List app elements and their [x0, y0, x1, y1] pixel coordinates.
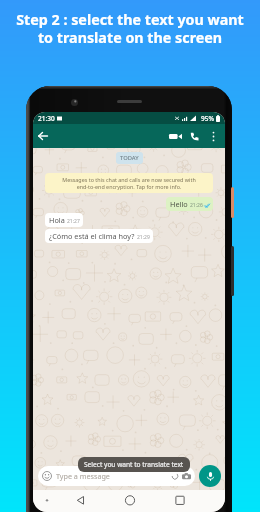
staticText: Type a message [56, 471, 110, 481]
staticText: TODAY [120, 154, 139, 162]
staticText: Messages to this chat and calls are now … [62, 176, 196, 190]
button[interactable]: More options [205, 124, 221, 148]
button[interactable]: ¿Cómo está el clima hoy? [45, 229, 153, 243]
button[interactable]: Video call [165, 124, 185, 148]
staticText: 95% [201, 114, 214, 123]
button[interactable]: Hola [45, 213, 83, 227]
staticText: Step 2 : select the text you want to tra… [16, 10, 244, 47]
button[interactable]: Voice message [199, 465, 221, 487]
button[interactable]: Type a message [38, 466, 195, 486]
staticText: Hola [49, 215, 65, 225]
button[interactable]: TODAY [116, 152, 143, 164]
staticText: Select you want to translate text [84, 460, 184, 469]
button[interactable]: Hello [166, 197, 213, 211]
button[interactable]: Messages to this chat and calls are now … [45, 173, 213, 193]
staticText: 21:27 [67, 218, 80, 225]
staticText: ¿Cómo está el clima hoy? [49, 231, 135, 241]
button[interactable]: Select you want to translate text [78, 457, 190, 472]
button[interactable]: Call [185, 124, 205, 148]
staticText: 21:26 [190, 202, 203, 209]
staticText: Hello [170, 199, 188, 209]
button[interactable]: Back [33, 124, 53, 148]
staticText: 21:29 [137, 234, 150, 241]
staticText: 21:30 [38, 114, 55, 123]
